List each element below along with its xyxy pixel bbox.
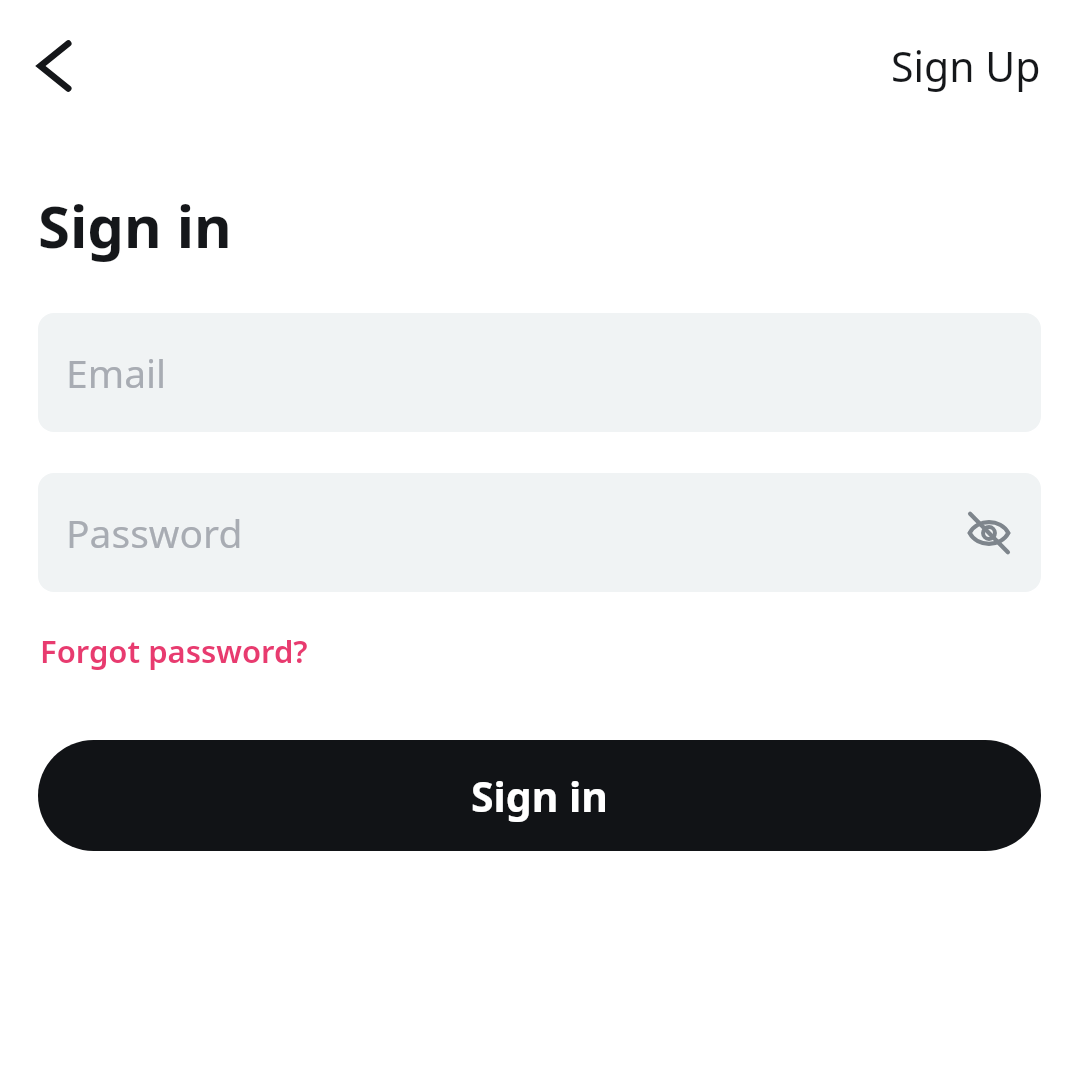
button[interactable]: Back bbox=[26, 38, 82, 94]
button[interactable]: Password bbox=[38, 473, 1041, 592]
staticText: Sign Up bbox=[891, 38, 1041, 94]
button[interactable]: Show password bbox=[961, 505, 1017, 561]
button[interactable]: Sign in bbox=[38, 740, 1041, 851]
staticText: Email bbox=[66, 346, 167, 399]
button[interactable]: Forgot password? bbox=[38, 624, 310, 678]
staticText: Sign in bbox=[471, 768, 608, 824]
staticText: Sign in bbox=[38, 186, 232, 265]
button[interactable]: Email bbox=[38, 313, 1041, 432]
button[interactable]: Sign Up bbox=[879, 30, 1053, 102]
staticText: Forgot password? bbox=[40, 630, 308, 672]
staticText: Password bbox=[66, 506, 243, 559]
